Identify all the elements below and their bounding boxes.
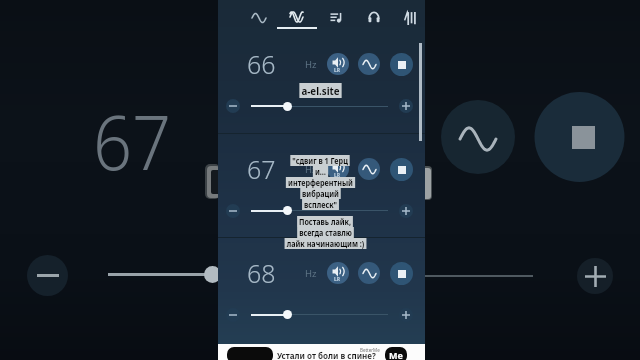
staticText: LR <box>334 172 341 179</box>
staticText: интерферентный <box>288 177 353 188</box>
staticText: a-el.site <box>301 83 340 98</box>
button[interactable]: Waveform <box>358 158 380 180</box>
button[interactable]: Tone generator <box>241 0 277 38</box>
staticText: Hz <box>305 58 317 71</box>
button[interactable]: Channel LR <box>327 262 349 284</box>
staticText: лайк начинающим :) <box>286 238 365 249</box>
staticText: LR <box>334 276 341 283</box>
staticText: Me <box>389 349 403 360</box>
button[interactable]: Binaural beats <box>278 0 314 38</box>
button[interactable]: Stop <box>390 262 413 285</box>
staticText: всплеск" <box>304 199 337 210</box>
button[interactable]: Spectrum <box>393 0 429 38</box>
staticText: и… <box>315 166 326 177</box>
button[interactable]: Decrease frequency <box>226 99 240 113</box>
button[interactable]: Stop <box>390 53 413 76</box>
staticText: 67 <box>247 152 276 186</box>
button[interactable]: Channel LR <box>327 158 349 180</box>
staticText: Hz <box>305 163 317 176</box>
staticText: 67 <box>93 89 171 193</box>
button[interactable]: Increase frequency <box>399 308 413 322</box>
button[interactable]: Increase frequency <box>399 99 413 113</box>
staticText: вибраций <box>302 188 339 199</box>
staticText: BetterMe <box>360 347 380 353</box>
staticText: Поставь лайк, <box>299 216 351 227</box>
staticText: Устали от боли в спине? <box>277 350 376 360</box>
button[interactable]: Increase frequency <box>399 204 413 218</box>
button[interactable]: Headphones <box>356 0 392 38</box>
button[interactable]: Channel LR <box>327 53 349 75</box>
staticText: "сдвиг в 1 Герц <box>292 155 348 166</box>
staticText: 68 <box>247 256 276 290</box>
button[interactable]: Decrease frequency <box>226 204 240 218</box>
button[interactable]: Stop <box>390 158 413 181</box>
staticText: 66 <box>247 47 276 81</box>
button[interactable]: Decrease frequency <box>226 308 240 322</box>
button[interactable]: Waveform <box>358 262 380 284</box>
button[interactable]: Playlist <box>318 0 354 38</box>
staticText: Hz <box>305 267 317 280</box>
button[interactable]: Waveform <box>358 53 380 75</box>
staticText: всегда ставлю <box>299 227 352 238</box>
staticText: LR <box>334 67 341 74</box>
